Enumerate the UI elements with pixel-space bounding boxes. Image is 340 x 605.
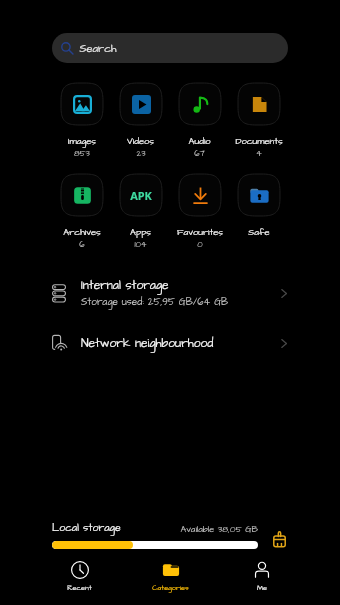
button[interactable]: Safe [229, 174, 288, 239]
staticText: Me [257, 583, 267, 593]
staticText: 23 [136, 148, 146, 160]
staticText: 0 [197, 239, 203, 251]
staticText: Audio [188, 135, 211, 148]
button[interactable]: Images [52, 83, 111, 160]
staticText: Documents [235, 135, 283, 148]
staticText: Available 38,05 GB [180, 523, 258, 536]
staticText: APK [130, 188, 152, 203]
staticText: Videos [127, 135, 154, 148]
button[interactable]: Documents [229, 83, 288, 160]
staticText: Images [68, 135, 96, 148]
staticText: Safe [248, 226, 270, 239]
staticText: Categories [152, 583, 189, 593]
staticText: Apps [130, 226, 151, 239]
button[interactable]: Internal storage [0, 270, 340, 316]
staticText: Internal storage [81, 277, 169, 294]
button[interactable]: APK [111, 174, 170, 251]
staticText: 4 [256, 148, 262, 160]
staticText: 853 [74, 148, 90, 160]
button[interactable]: Videos [111, 83, 170, 160]
staticText: Network neighbourhood [81, 335, 214, 352]
button[interactable]: Audio [170, 83, 229, 160]
button[interactable]: Recent [34, 559, 125, 594]
button[interactable]: Network neighbourhood [0, 322, 340, 364]
button[interactable]: Archives [52, 174, 111, 251]
staticText: 104 [134, 239, 147, 251]
staticText: Archives [63, 226, 101, 239]
staticText: Search [79, 41, 117, 56]
button[interactable]: Me [216, 559, 307, 594]
button[interactable]: Favourites [170, 174, 229, 251]
staticText: Favourites [177, 226, 223, 239]
staticText: Recent [67, 583, 92, 593]
staticText: Local storage [52, 521, 121, 536]
button[interactable]: Search [52, 33, 288, 63]
staticText: 6 [79, 239, 85, 251]
button[interactable]: Categories [125, 559, 216, 594]
staticText: 67 [194, 148, 205, 160]
staticText: Storage used: 25,95 GB/64 GB [81, 295, 229, 309]
button[interactable]: Clean up storage [267, 527, 291, 551]
